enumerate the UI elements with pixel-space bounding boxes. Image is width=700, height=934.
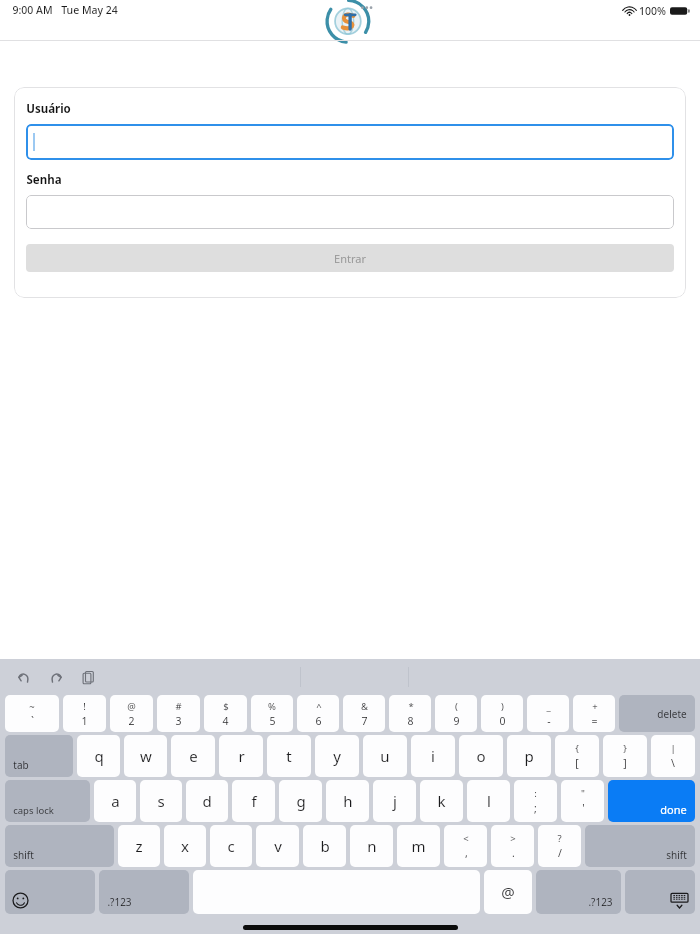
button[interactable] xyxy=(26,124,674,160)
button[interactable]: ? xyxy=(538,825,581,867)
button[interactable]: Hide keyboard xyxy=(625,870,695,914)
button[interactable]: c xyxy=(210,825,252,867)
button[interactable]: : xyxy=(514,780,557,822)
button[interactable]: ! xyxy=(63,695,106,732)
button[interactable]: * xyxy=(389,695,431,732)
button[interactable]: @ xyxy=(484,870,532,914)
button[interactable]: Undo xyxy=(10,663,38,691)
button[interactable]: e xyxy=(171,735,215,777)
staticText: | xyxy=(670,742,676,755)
button[interactable]: ^ xyxy=(297,695,339,732)
button[interactable]: v xyxy=(256,825,299,867)
button[interactable]: > xyxy=(491,825,534,867)
button[interactable]: shift xyxy=(585,825,695,867)
button[interactable]: .?123 xyxy=(99,870,189,914)
button[interactable]: m xyxy=(397,825,440,867)
staticText: Entrar xyxy=(334,251,366,266)
button[interactable]: _ xyxy=(527,695,569,732)
staticText: c xyxy=(227,836,235,856)
staticText: 5 xyxy=(269,714,276,728)
button[interactable]: # xyxy=(157,695,200,732)
button[interactable]: a xyxy=(94,780,136,822)
button[interactable]: Entrar xyxy=(26,244,674,272)
button[interactable]: Paste xyxy=(74,663,102,691)
button[interactable]: i xyxy=(411,735,455,777)
button[interactable]: Redo xyxy=(42,663,70,691)
button[interactable]: k xyxy=(420,780,463,822)
staticText: . xyxy=(512,846,515,860)
staticText: h xyxy=(343,791,353,811)
button[interactable]: h xyxy=(326,780,369,822)
staticText: } xyxy=(623,742,627,755)
button[interactable]: ( xyxy=(435,695,477,732)
button[interactable]: s xyxy=(140,780,182,822)
staticText: caps lock xyxy=(13,804,54,817)
button[interactable]: l xyxy=(467,780,510,822)
button[interactable] xyxy=(26,195,674,229)
button[interactable]: ) xyxy=(481,695,523,732)
button[interactable]: < xyxy=(444,825,487,867)
staticText: .?123 xyxy=(588,895,613,909)
button[interactable]: x xyxy=(164,825,206,867)
button[interactable]: r xyxy=(219,735,263,777)
button[interactable]: t xyxy=(267,735,311,777)
button[interactable]: + xyxy=(573,695,615,732)
button[interactable]: f xyxy=(232,780,275,822)
staticText: p xyxy=(524,746,534,766)
button[interactable]: | xyxy=(651,735,695,777)
button[interactable]: n xyxy=(350,825,393,867)
staticText: v xyxy=(274,836,282,856)
staticText: ~ xyxy=(29,700,35,713)
staticText: ! xyxy=(83,700,86,713)
button[interactable]: } xyxy=(603,735,647,777)
button[interactable]: g xyxy=(279,780,322,822)
button[interactable]: { xyxy=(555,735,599,777)
button[interactable]: " xyxy=(561,780,604,822)
staticText: d xyxy=(202,791,212,811)
staticText: j xyxy=(393,791,397,811)
staticText: ' xyxy=(582,801,585,815)
button[interactable]: p xyxy=(507,735,551,777)
button[interactable]: shift xyxy=(5,825,114,867)
staticText: = xyxy=(591,714,598,728)
button[interactable]: u xyxy=(363,735,407,777)
staticText: a xyxy=(111,791,120,811)
button[interactable]: tab xyxy=(5,735,73,777)
button[interactable]: b xyxy=(303,825,346,867)
staticText: 2 xyxy=(128,714,135,728)
staticText: : xyxy=(534,787,537,800)
button[interactable]: done xyxy=(608,780,695,822)
button[interactable]: caps lock xyxy=(5,780,90,822)
button[interactable]: Emoji xyxy=(5,870,95,914)
staticText: o xyxy=(476,746,486,766)
button[interactable]: w xyxy=(124,735,167,777)
button[interactable]: @ xyxy=(110,695,153,732)
staticText: [ xyxy=(575,756,579,770)
staticText: delete xyxy=(657,707,687,721)
button[interactable]: $ xyxy=(204,695,247,732)
button[interactable]: j xyxy=(373,780,416,822)
staticText: ) xyxy=(501,700,504,713)
staticText: e xyxy=(189,746,198,766)
button[interactable]: % xyxy=(251,695,293,732)
button[interactable]: & xyxy=(343,695,385,732)
button[interactable]: z xyxy=(118,825,160,867)
button[interactable]: ~ xyxy=(5,695,59,732)
staticText: ] xyxy=(623,756,627,770)
staticText: f xyxy=(251,791,257,811)
button[interactable]: delete xyxy=(619,695,695,732)
staticText: / xyxy=(558,846,562,860)
staticText: & xyxy=(361,700,368,713)
button[interactable]: o xyxy=(459,735,503,777)
staticText: Senha xyxy=(26,172,62,188)
staticText: i xyxy=(431,746,435,766)
button[interactable]: d xyxy=(186,780,228,822)
staticText: k xyxy=(437,791,446,811)
staticText: _ xyxy=(546,700,551,713)
staticText: b xyxy=(320,836,330,856)
button[interactable]: q xyxy=(77,735,120,777)
button[interactable]: y xyxy=(315,735,359,777)
button[interactable]: .?123 xyxy=(536,870,621,914)
staticText: - xyxy=(547,714,551,728)
